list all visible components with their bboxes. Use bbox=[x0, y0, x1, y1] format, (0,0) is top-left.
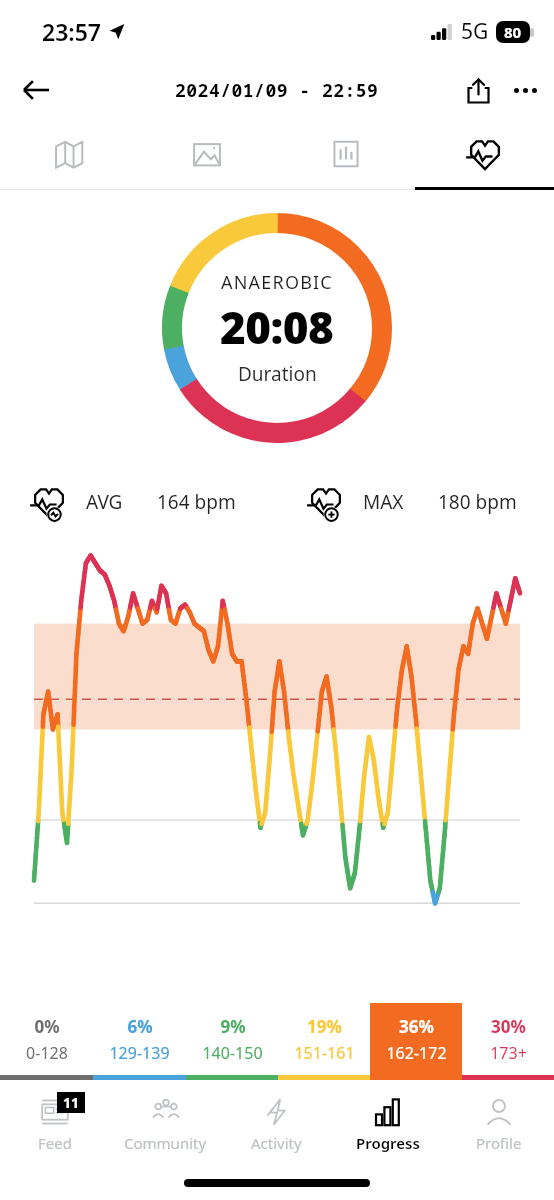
staticText: 2024/01/09 - 22:59 bbox=[175, 78, 379, 103]
staticText: 129-139 bbox=[109, 1042, 170, 1064]
staticText: 80 bbox=[504, 22, 522, 42]
staticText: Profile bbox=[476, 1133, 522, 1153]
staticText: 11 bbox=[63, 1093, 80, 1112]
button[interactable]: Photos bbox=[138, 118, 276, 190]
staticText: 0% bbox=[34, 1015, 60, 1038]
staticText: 5G bbox=[461, 17, 489, 46]
button[interactable]: Map bbox=[0, 118, 138, 190]
staticText: 6% bbox=[127, 1015, 153, 1038]
staticText: Feed bbox=[38, 1133, 72, 1153]
staticText: 0-128 bbox=[26, 1042, 68, 1064]
button[interactable]: More options bbox=[502, 64, 548, 116]
staticText: 180 bpm bbox=[438, 489, 517, 515]
staticText: 23:57 bbox=[42, 16, 101, 47]
staticText: 30% bbox=[491, 1015, 526, 1038]
button[interactable]: AVG bbox=[28, 474, 277, 530]
staticText: Community bbox=[124, 1133, 207, 1153]
staticText: 173+ bbox=[490, 1042, 527, 1064]
staticText: 140-150 bbox=[202, 1042, 263, 1064]
staticText: MAX bbox=[363, 489, 404, 515]
staticText: 164 bpm bbox=[157, 489, 236, 515]
staticText: 9% bbox=[220, 1015, 246, 1038]
staticText: Duration bbox=[238, 361, 317, 387]
staticText: 151-161 bbox=[294, 1042, 355, 1064]
button[interactable]: 19% bbox=[278, 1003, 370, 1075]
button[interactable]: 9% bbox=[186, 1003, 278, 1075]
staticText: 20:08 bbox=[220, 297, 334, 357]
staticText: Activity bbox=[251, 1133, 302, 1153]
button[interactable]: Activity bbox=[221, 1080, 332, 1166]
button[interactable]: 36% bbox=[370, 1003, 462, 1075]
staticText: 36% bbox=[399, 1015, 434, 1038]
staticText: Progress bbox=[356, 1133, 420, 1153]
button[interactable]: 6% bbox=[93, 1003, 186, 1075]
button[interactable]: Profile bbox=[443, 1080, 554, 1166]
button[interactable]: Share bbox=[454, 66, 502, 114]
staticText: 19% bbox=[307, 1015, 342, 1038]
button[interactable]: Heart rate bbox=[415, 118, 554, 190]
staticText: ANAEROBIC bbox=[221, 270, 333, 295]
staticText: 162-172 bbox=[386, 1042, 447, 1064]
button[interactable]: MAX bbox=[305, 474, 554, 530]
button[interactable]: Progress bbox=[332, 1080, 443, 1166]
staticText: AVG bbox=[86, 489, 123, 515]
button[interactable]: 30% bbox=[462, 1003, 554, 1075]
button[interactable]: Back bbox=[12, 66, 60, 114]
button[interactable]: 11 bbox=[0, 1080, 110, 1166]
button[interactable]: Community bbox=[110, 1080, 221, 1166]
button[interactable]: Stats bbox=[276, 118, 415, 190]
button[interactable]: 0% bbox=[0, 1003, 93, 1075]
